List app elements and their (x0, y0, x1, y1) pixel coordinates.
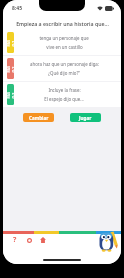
staticText: ahora haz que un personaje diga: (30, 61, 99, 67)
staticText: 8:45 (12, 5, 22, 12)
staticText: Jugar (79, 115, 92, 121)
staticText: vive en un castillo (46, 44, 83, 50)
button[interactable]: PASO 1 (3, 30, 121, 55)
button[interactable]: PASO 2 (3, 56, 121, 81)
button[interactable]: Jugar (70, 113, 101, 122)
staticText: El espejo dijo que... (44, 96, 84, 102)
staticText: PASO 2 (7, 65, 14, 72)
staticText: Incluye la frase: (48, 87, 81, 93)
staticText: ? (13, 235, 17, 245)
button[interactable]: Grabar (24, 235, 34, 245)
staticText: Cambiar (29, 115, 49, 121)
button[interactable]: PASO 3 (3, 82, 121, 107)
staticText: ¿Qué dijo mío?” (48, 70, 80, 76)
staticText: Empieza a escribir una historia que... (16, 20, 109, 27)
staticText: PASO 3 (7, 91, 14, 98)
staticText: PASO 1 (7, 39, 14, 46)
button[interactable]: Cambiar (23, 113, 54, 122)
staticText: tenga un personaje que (39, 35, 89, 41)
button[interactable]: Inicio (38, 235, 48, 245)
button[interactable]: Ayuda (10, 235, 20, 245)
button[interactable]: Mascota (96, 231, 118, 253)
